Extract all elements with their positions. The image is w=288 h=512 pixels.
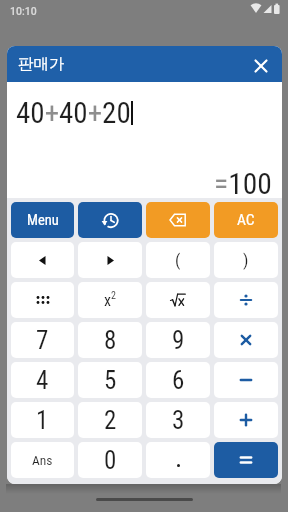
button[interactable]: 6 [146, 362, 210, 398]
button[interactable] [11, 242, 74, 278]
button[interactable]: AC [214, 202, 278, 238]
button[interactable]: Ans [11, 442, 74, 478]
staticText: 40+40+20 [16, 96, 131, 130]
button[interactable] [241, 46, 277, 82]
staticText: =100 [214, 167, 272, 202]
button[interactable]: 4 [11, 362, 74, 398]
staticText: 7 [36, 326, 49, 355]
staticText: Ans [32, 452, 53, 468]
button[interactable] [214, 282, 278, 318]
button[interactable] [146, 202, 210, 238]
staticText: 8 [104, 326, 117, 355]
staticText: Menu [27, 212, 59, 229]
button[interactable] [146, 442, 210, 478]
button[interactable]: 8 [78, 322, 142, 358]
staticText: 10:10 [10, 5, 37, 17]
staticText: ) [243, 250, 249, 270]
staticText: 3 [172, 406, 185, 435]
button[interactable] [11, 282, 74, 318]
button[interactable] [214, 362, 278, 398]
button[interactable] [214, 322, 278, 358]
button[interactable] [78, 202, 142, 238]
button[interactable]: Menu [11, 202, 74, 238]
staticText: ( [175, 250, 181, 270]
staticText: 6 [172, 366, 185, 395]
button[interactable]: 9 [146, 322, 210, 358]
button[interactable] [214, 442, 278, 478]
button[interactable] [146, 282, 210, 318]
button[interactable]: 0 [78, 442, 142, 478]
staticText: 1 [36, 406, 49, 435]
staticText: 판매가 [18, 54, 65, 74]
button[interactable]: ) [214, 242, 278, 278]
button[interactable] [214, 402, 278, 438]
button[interactable]: 1 [11, 402, 74, 438]
button[interactable]: ( [146, 242, 210, 278]
staticText: AC [237, 211, 255, 229]
button[interactable]: 7 [11, 322, 74, 358]
button[interactable]: 3 [146, 402, 210, 438]
button[interactable]: 2 [78, 402, 142, 438]
staticText: 9 [172, 326, 185, 355]
staticText: 0 [104, 446, 117, 475]
staticText: 4 [36, 366, 49, 395]
button[interactable]: 5 [78, 362, 142, 398]
staticText: 2 [104, 406, 117, 435]
staticText: x2 [104, 290, 116, 310]
button[interactable] [78, 242, 142, 278]
staticText: 5 [104, 366, 117, 395]
button[interactable]: x2 [78, 282, 142, 318]
